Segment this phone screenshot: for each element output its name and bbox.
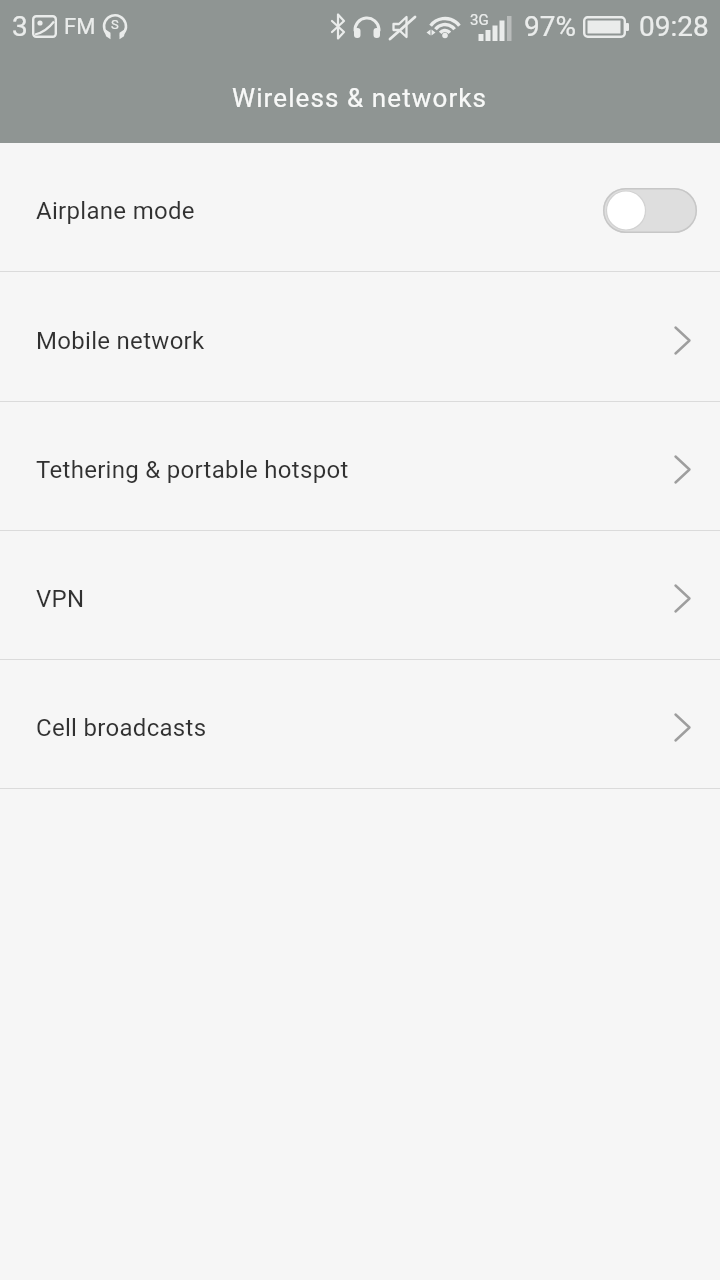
button[interactable]: Airplane mode (0, 143, 720, 272)
button[interactable]: Mobile network (0, 272, 720, 402)
staticText: VPN (36, 585, 85, 613)
staticText: S (111, 17, 119, 32)
staticText: Wireless & networks (232, 83, 488, 113)
staticText: Cell broadcasts (36, 714, 207, 742)
staticText: 3 (12, 10, 28, 43)
staticText: 09:28 (639, 10, 709, 43)
staticText: Airplane mode (36, 197, 195, 225)
staticText: 97% (524, 10, 576, 43)
staticText: Tethering & portable hotspot (36, 456, 349, 484)
staticText: Mobile network (36, 327, 205, 355)
button[interactable]: VPN (0, 531, 720, 660)
staticText: 3G (470, 11, 489, 29)
staticText: FM (64, 14, 96, 40)
button[interactable]: Tethering & portable hotspot (0, 402, 720, 531)
button[interactable]: Cell broadcasts (0, 660, 720, 789)
